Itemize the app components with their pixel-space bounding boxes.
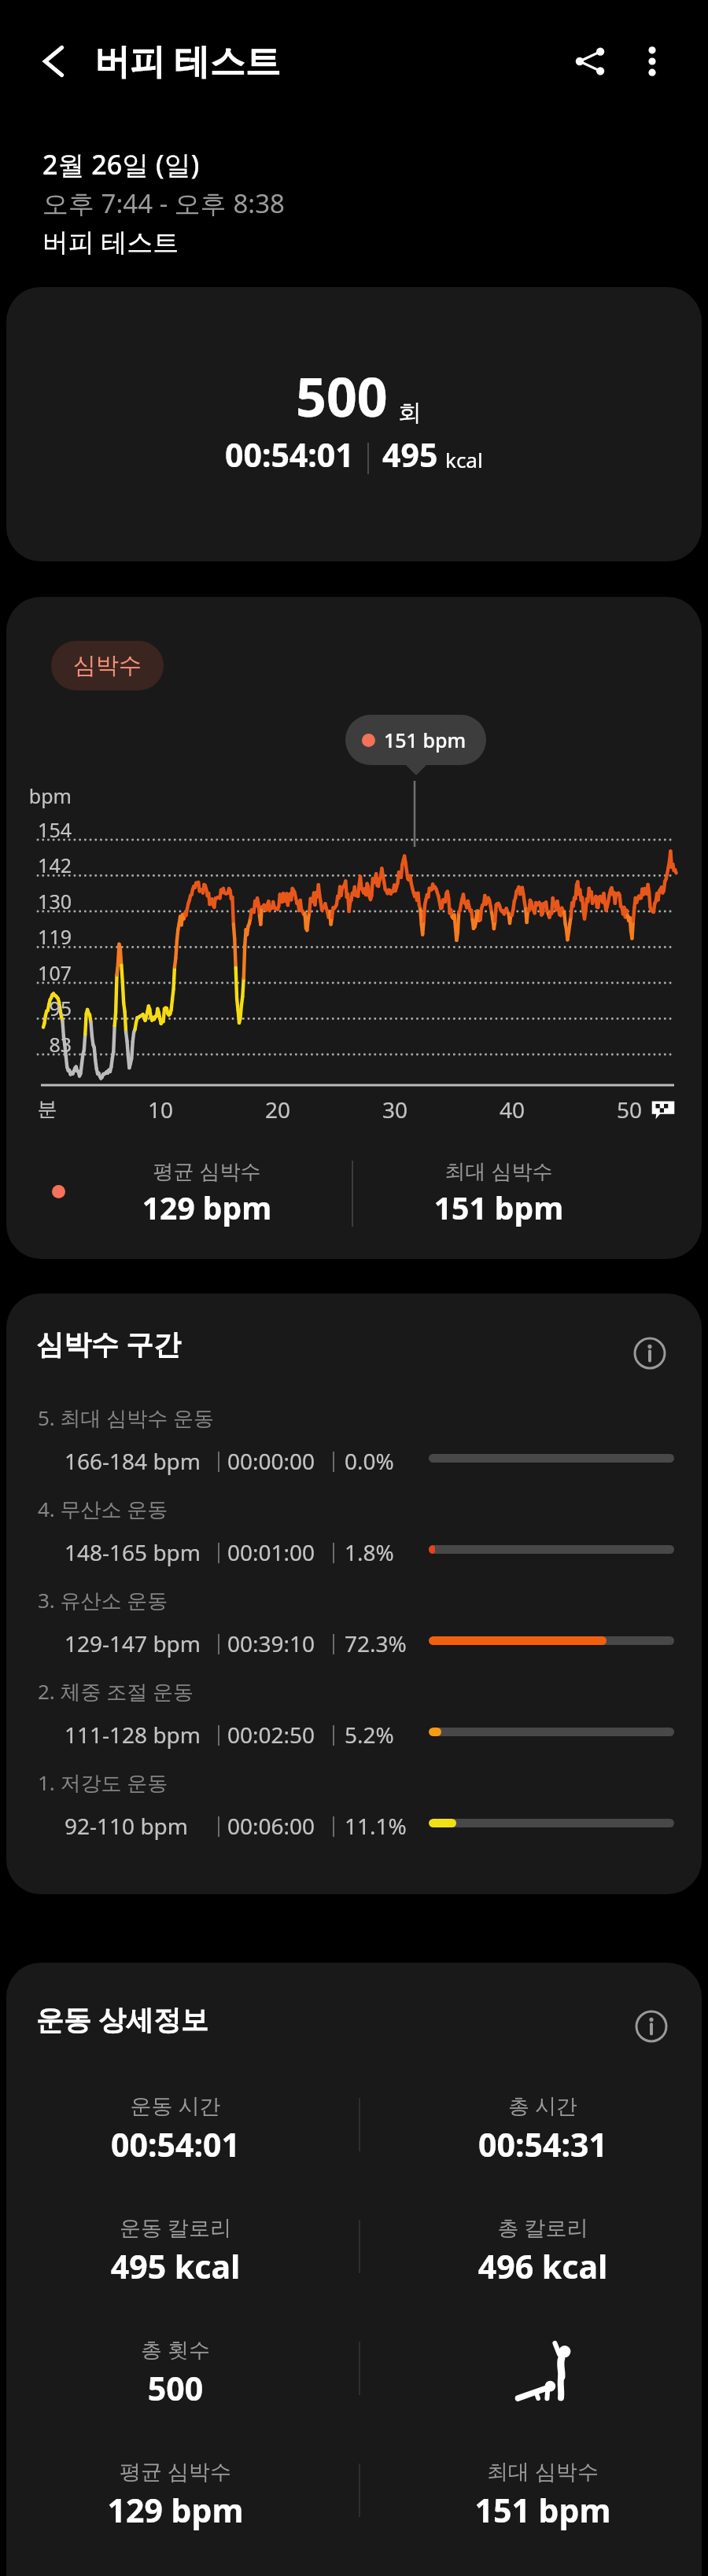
button[interactable]: Share: [560, 31, 620, 91]
staticText: 회: [398, 398, 422, 428]
staticText: 운동 시간: [57, 2091, 293, 2120]
staticText: 151 bpm: [400, 1187, 597, 1228]
staticText: 운동 칼로리: [57, 2213, 293, 2242]
staticText: 10: [137, 1095, 184, 1124]
staticText: 0.0%: [345, 1446, 394, 1476]
staticText: 107: [6, 959, 72, 986]
staticText: 119: [6, 923, 72, 950]
staticText: 00:01:00: [227, 1537, 315, 1567]
staticText: 심박수: [73, 651, 142, 680]
staticText: 총 칼로리: [425, 2213, 661, 2242]
staticText: 500: [296, 359, 388, 432]
staticText: 142: [6, 852, 72, 878]
staticText: 50: [606, 1095, 653, 1124]
staticText: 1.8%: [345, 1537, 394, 1567]
staticText: 2. 체중 조절 운동: [38, 1677, 194, 1706]
staticText: 00:06:00: [227, 1811, 315, 1841]
staticText: 151 bpm: [384, 727, 466, 753]
button[interactable]: Information: [623, 1998, 680, 2055]
staticText: 5. 최대 심박수 운동: [38, 1404, 215, 1432]
staticText: 11.1%: [345, 1811, 407, 1841]
staticText: 버피 테스트: [42, 224, 179, 259]
staticText: 운동 상세정보: [36, 2000, 209, 2038]
staticText: 111-128 bpm: [65, 1720, 201, 1750]
staticText: 130: [6, 888, 72, 914]
staticText: 00:00:00: [227, 1446, 315, 1476]
staticText: 4. 무산소 운동: [38, 1495, 168, 1523]
staticText: 00:54:31: [425, 2122, 661, 2166]
staticText: 오후 7:44 - 오후 8:38: [42, 186, 285, 221]
staticText: 심박수 구간: [36, 1325, 182, 1363]
staticText: 129 bpm: [57, 2488, 293, 2532]
staticText: 평균 심박수: [57, 2456, 293, 2486]
staticText: 00:54:01: [57, 2122, 293, 2166]
staticText: 495 kcal: [57, 2244, 293, 2288]
staticText: 72.3%: [345, 1628, 407, 1658]
staticText: 20: [254, 1095, 301, 1124]
staticText: bpm: [6, 782, 72, 809]
button[interactable]: Back: [24, 31, 83, 91]
staticText: 83: [6, 1031, 72, 1058]
staticText: 95: [6, 995, 72, 1021]
button[interactable]: More options: [622, 31, 682, 91]
staticText: 5.2%: [345, 1720, 394, 1750]
staticText: 총 시간: [425, 2091, 661, 2120]
staticText: 최대 심박수: [425, 2456, 661, 2486]
staticText: 129 bpm: [109, 1187, 305, 1228]
staticText: 분: [28, 1097, 67, 1121]
staticText: 154: [6, 816, 72, 843]
staticText: 1. 저강도 운동: [38, 1768, 168, 1797]
staticText: 총 횟수: [57, 2335, 293, 2364]
staticText: 00:39:10: [227, 1628, 315, 1658]
staticText: 30: [371, 1095, 419, 1124]
staticText: 129-147 bpm: [65, 1628, 201, 1658]
staticText: 버피 테스트: [94, 36, 281, 84]
staticText: 496 kcal: [425, 2244, 661, 2288]
button[interactable]: 심박수: [51, 641, 164, 690]
staticText: 2월 26일 (일): [42, 146, 200, 182]
button[interactable]: Information: [621, 1325, 678, 1382]
staticText: 151 bpm: [425, 2488, 661, 2532]
staticText: 최대 심박수: [400, 1157, 597, 1185]
staticText: 40: [489, 1095, 536, 1124]
staticText: 500: [57, 2366, 293, 2410]
staticText: 3. 유산소 운동: [38, 1586, 168, 1614]
staticText: 92-110 bpm: [65, 1811, 188, 1841]
staticText: 평균 심박수: [109, 1157, 305, 1185]
staticText: 00:54:01: [225, 432, 354, 477]
staticText: 495: [382, 432, 438, 477]
staticText: 166-184 bpm: [65, 1446, 201, 1476]
staticText: kcal: [445, 446, 483, 473]
staticText: 148-165 bpm: [65, 1537, 201, 1567]
staticText: 00:02:50: [227, 1720, 315, 1750]
